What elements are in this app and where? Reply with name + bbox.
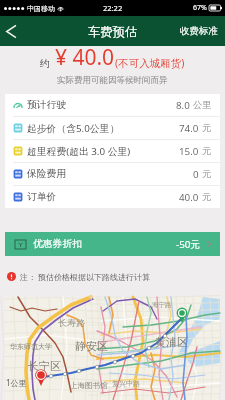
staticText: 元 [202,122,212,134]
staticText: 实际费用可能因等候时间而异 [57,75,168,86]
staticText: 元 [202,191,212,203]
staticText: 华东师范大学 [10,342,52,351]
staticText: 上海图书馆 [70,381,108,390]
staticText: 优惠券折扣 [33,238,82,250]
staticText: 订单价 [27,191,57,203]
staticText: 长寿路 [58,317,85,328]
staticText: ¥ 40.0 [55,43,115,72]
button[interactable]: 订单价 [5,186,220,208]
staticText: 中国移动 [27,4,55,13]
staticText: 元 [202,145,212,157]
button[interactable]: 优惠券折扣 [5,232,220,256]
button[interactable]: 预计行驶 [5,94,220,116]
staticText: 预计行驶 [27,99,67,111]
button[interactable]: 起步价（含5.0公里） [5,117,220,139]
button[interactable]: Map [5,297,220,400]
staticText: 海宁路 [152,301,172,309]
staticText: 8.0 [176,99,190,112]
button[interactable]: 保险费用 [5,163,220,185]
staticText: (不可入城厢货) [115,56,185,70]
button[interactable]: 收费标准 [173,16,225,46]
staticText: 车费预估 [88,24,138,39]
staticText: 67% [193,3,207,13]
button[interactable]: 超里程费(超出 3.0 公里) [5,140,220,162]
staticText: 起步价（含5.0公里） [27,122,120,135]
staticText: -50元 [176,238,201,251]
staticText: 长宁区 [28,359,61,373]
staticText: 黄浦区 [155,335,188,349]
staticText: 超里程费(超出 3.0 公里) [27,145,131,158]
staticText: 15.0 [179,145,199,158]
staticText: 40.0 [179,191,199,204]
staticText: 公里 [193,99,212,111]
staticText: 74.0 [179,122,199,135]
staticText: 注： 预估价格根据以下路线进行计算 [20,271,151,282]
staticText: 约 [40,57,50,70]
staticText: 元 [202,168,212,180]
staticText: 静安区 [75,339,108,353]
staticText: 0 [193,168,199,181]
staticText: 收费标准 [180,25,218,37]
staticText: 22:22 [103,3,123,13]
staticText: 保险费用 [27,168,67,180]
staticText: 复兴中路 [112,379,140,388]
button[interactable]: Back [0,16,22,46]
staticText: 1公里 [6,377,27,388]
